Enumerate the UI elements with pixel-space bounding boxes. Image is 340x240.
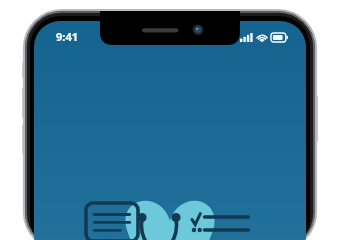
button[interactable]: App logo (80, 193, 260, 240)
button[interactable]: Signal, Wi-Fi and battery status (240, 31, 288, 43)
staticText: 9:41 (56, 29, 78, 44)
button[interactable]: 9:41 (56, 29, 78, 44)
